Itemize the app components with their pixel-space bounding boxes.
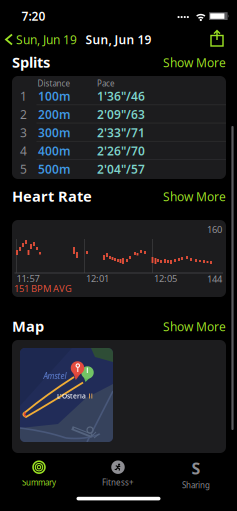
staticText: 151 BPM AVG (14, 282, 72, 295)
staticText: Show More (163, 318, 226, 334)
staticText: 100m (38, 88, 71, 104)
staticText: 4 (20, 143, 27, 159)
staticText: Splits (12, 52, 50, 72)
staticText: 1'36"/46 (97, 88, 145, 104)
staticText: Pace (97, 78, 115, 89)
button[interactable]: Show More (146, 188, 226, 204)
button[interactable]: Show More (146, 54, 226, 70)
staticText: Map (12, 316, 44, 336)
button[interactable]: Fitness+ (86, 460, 150, 488)
staticText: Fitness+ (102, 477, 134, 488)
staticText: 300m (38, 124, 71, 140)
staticText: Heart Rate (12, 186, 92, 206)
staticText: Summary (22, 477, 56, 488)
staticText: 160 (207, 223, 222, 236)
staticText: 144 (207, 273, 222, 285)
staticText: 200m (38, 106, 71, 122)
button[interactable]: S (164, 460, 228, 488)
staticText: Amstel (43, 371, 66, 381)
staticText: 2'26"/70 (97, 143, 145, 159)
staticText: 2'04"/57 (97, 161, 145, 177)
staticText: Sun, Jun 19 (16, 31, 77, 47)
staticText: 500m (38, 161, 71, 177)
staticText: 3 (20, 124, 27, 140)
staticText: 2'33"/71 (97, 124, 145, 140)
staticText: 12:05 (154, 272, 177, 285)
staticText: L'Osteria (57, 392, 86, 400)
staticText: Sun, Jun 19 (85, 31, 151, 47)
staticText: 12:01 (86, 272, 109, 285)
staticText: 11:57 (16, 272, 39, 285)
staticText: 400m (38, 143, 71, 159)
button[interactable]: Sun, Jun 19 (6, 30, 106, 48)
staticText: Show More (163, 54, 226, 70)
button[interactable]: Share (208, 30, 226, 49)
button[interactable]: Show More (146, 318, 226, 334)
button[interactable]: Workout route map (20, 348, 113, 442)
button[interactable]: Summary (7, 460, 71, 488)
staticText: Show More (163, 188, 226, 204)
staticText: 2'09"/63 (97, 106, 145, 122)
staticText: Distance (37, 78, 70, 89)
staticText: 5 (20, 161, 27, 177)
staticText: 1 (20, 88, 27, 104)
staticText: S (191, 458, 200, 479)
staticText: Sharing (182, 480, 210, 490)
staticText: 7:20 (21, 8, 45, 24)
staticText: 2 (20, 106, 27, 122)
